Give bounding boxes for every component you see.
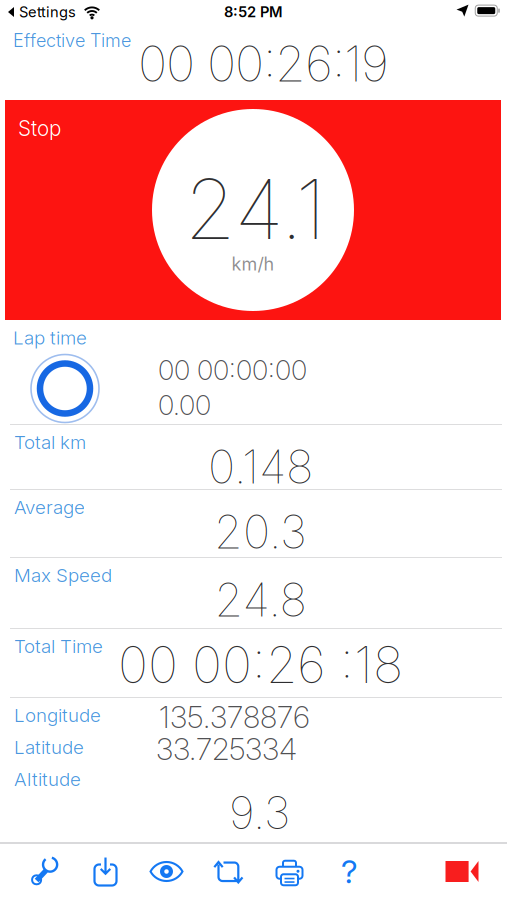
staticText: 0.148 [208, 439, 313, 495]
staticText: Settings [19, 3, 76, 21]
staticText: 0.00 [158, 389, 211, 422]
button[interactable]: Repeat [197, 843, 258, 899]
staticText: Lap time [13, 326, 87, 349]
staticText: 135.378876 [159, 699, 310, 735]
staticText: Total Time [14, 635, 103, 658]
staticText: Average [14, 496, 85, 519]
button[interactable]: Tools [15, 843, 75, 899]
staticText: Altitude [14, 768, 81, 791]
staticText: 9.3 [229, 785, 290, 840]
staticText: Max Speed [14, 564, 112, 587]
staticText: 00 00:26:19 [138, 34, 389, 93]
staticText: 24.1 [184, 159, 325, 259]
staticText: Total km [14, 431, 86, 454]
staticText: 00 00:00:00 [158, 353, 307, 387]
button[interactable]: View [136, 843, 197, 899]
staticText: Latitude [14, 736, 84, 759]
staticText: 24.8 [214, 572, 306, 628]
staticText: 33.725334 [156, 731, 297, 767]
button[interactable]: Lap [30, 353, 100, 423]
staticText: Stop [18, 116, 61, 141]
button[interactable]: Stop [5, 100, 501, 320]
button[interactable]: Save [75, 843, 136, 899]
button[interactable]: Help [319, 843, 380, 899]
staticText: km/h [231, 253, 274, 275]
staticText: 20.3 [214, 504, 307, 560]
staticText: Longitude [14, 704, 101, 727]
staticText: Effective Time [13, 30, 131, 51]
button[interactable]: Record video [432, 843, 492, 899]
button[interactable]: Print [258, 843, 319, 899]
button[interactable]: Back to Settings [0, 0, 103, 21]
staticText: 8:52 PM [224, 3, 283, 21]
staticText: ? [341, 852, 358, 891]
staticText: 00 00:26 :18 [118, 634, 403, 695]
